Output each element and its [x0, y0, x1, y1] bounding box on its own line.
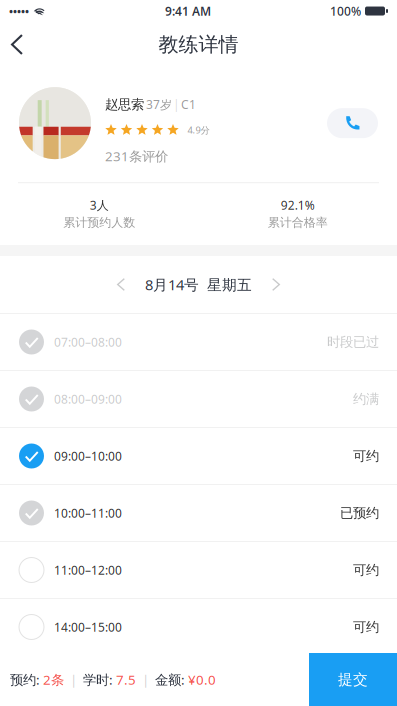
- staticText: 14:00–15:00: [54, 619, 122, 635]
- staticText: 赵思索: [105, 96, 144, 113]
- staticText: 教练详情: [158, 32, 238, 57]
- button[interactable]: 10:00–11:00: [0, 485, 397, 542]
- button[interactable]: 提交: [309, 653, 397, 706]
- staticText: 231条评价: [105, 147, 168, 165]
- staticText: ¥0.0: [185, 671, 216, 688]
- staticText: 100%: [330, 3, 361, 19]
- staticText: C1: [181, 96, 196, 112]
- staticText: 10:00–11:00: [54, 505, 122, 521]
- staticText: 预约:: [10, 671, 40, 688]
- staticText: 37岁: [146, 96, 172, 112]
- button[interactable]: Call coach: [327, 108, 378, 138]
- staticText: 可约: [353, 448, 379, 464]
- button[interactable]: 08:00–09:00: [0, 371, 397, 428]
- staticText: |: [173, 96, 180, 112]
- button[interactable]: Previous day: [107, 268, 135, 301]
- staticText: 累计预约人数: [63, 215, 135, 230]
- staticText: 可约: [353, 619, 379, 635]
- staticText: 约满: [353, 391, 379, 407]
- staticText: 4.9分: [187, 124, 209, 136]
- staticText: 学时:: [83, 671, 113, 688]
- button[interactable]: 14:00–15:00: [0, 599, 397, 656]
- staticText: 08:00–09:00: [54, 391, 122, 407]
- button[interactable]: 07:00–08:00: [0, 314, 397, 371]
- staticText: 07:00–08:00: [54, 334, 122, 350]
- staticText: 3人: [90, 197, 109, 213]
- staticText: 9:41 AM: [165, 3, 211, 19]
- staticText: 提交: [338, 670, 368, 688]
- staticText: 时段已过: [327, 334, 379, 350]
- button[interactable]: 09:00–10:00: [0, 428, 397, 485]
- button[interactable]: Back: [0, 22, 39, 67]
- staticText: 金额:: [155, 671, 185, 688]
- staticText: 已预约: [340, 505, 379, 521]
- staticText: 累计合格率: [268, 215, 328, 230]
- staticText: 92.1%: [281, 197, 315, 213]
- staticText: |: [64, 671, 83, 688]
- staticText: 可约: [353, 562, 379, 578]
- staticText: 8月14号 星期五: [145, 275, 252, 294]
- staticText: •••••: [9, 4, 29, 18]
- staticText: 7.5: [113, 671, 136, 688]
- button[interactable]: 11:00–12:00: [0, 542, 397, 599]
- staticText: |: [136, 671, 155, 688]
- staticText: 11:00–12:00: [54, 562, 122, 578]
- staticText: 2条: [40, 671, 64, 688]
- staticText: 09:00–10:00: [54, 448, 122, 464]
- button[interactable]: Next day: [262, 268, 290, 301]
